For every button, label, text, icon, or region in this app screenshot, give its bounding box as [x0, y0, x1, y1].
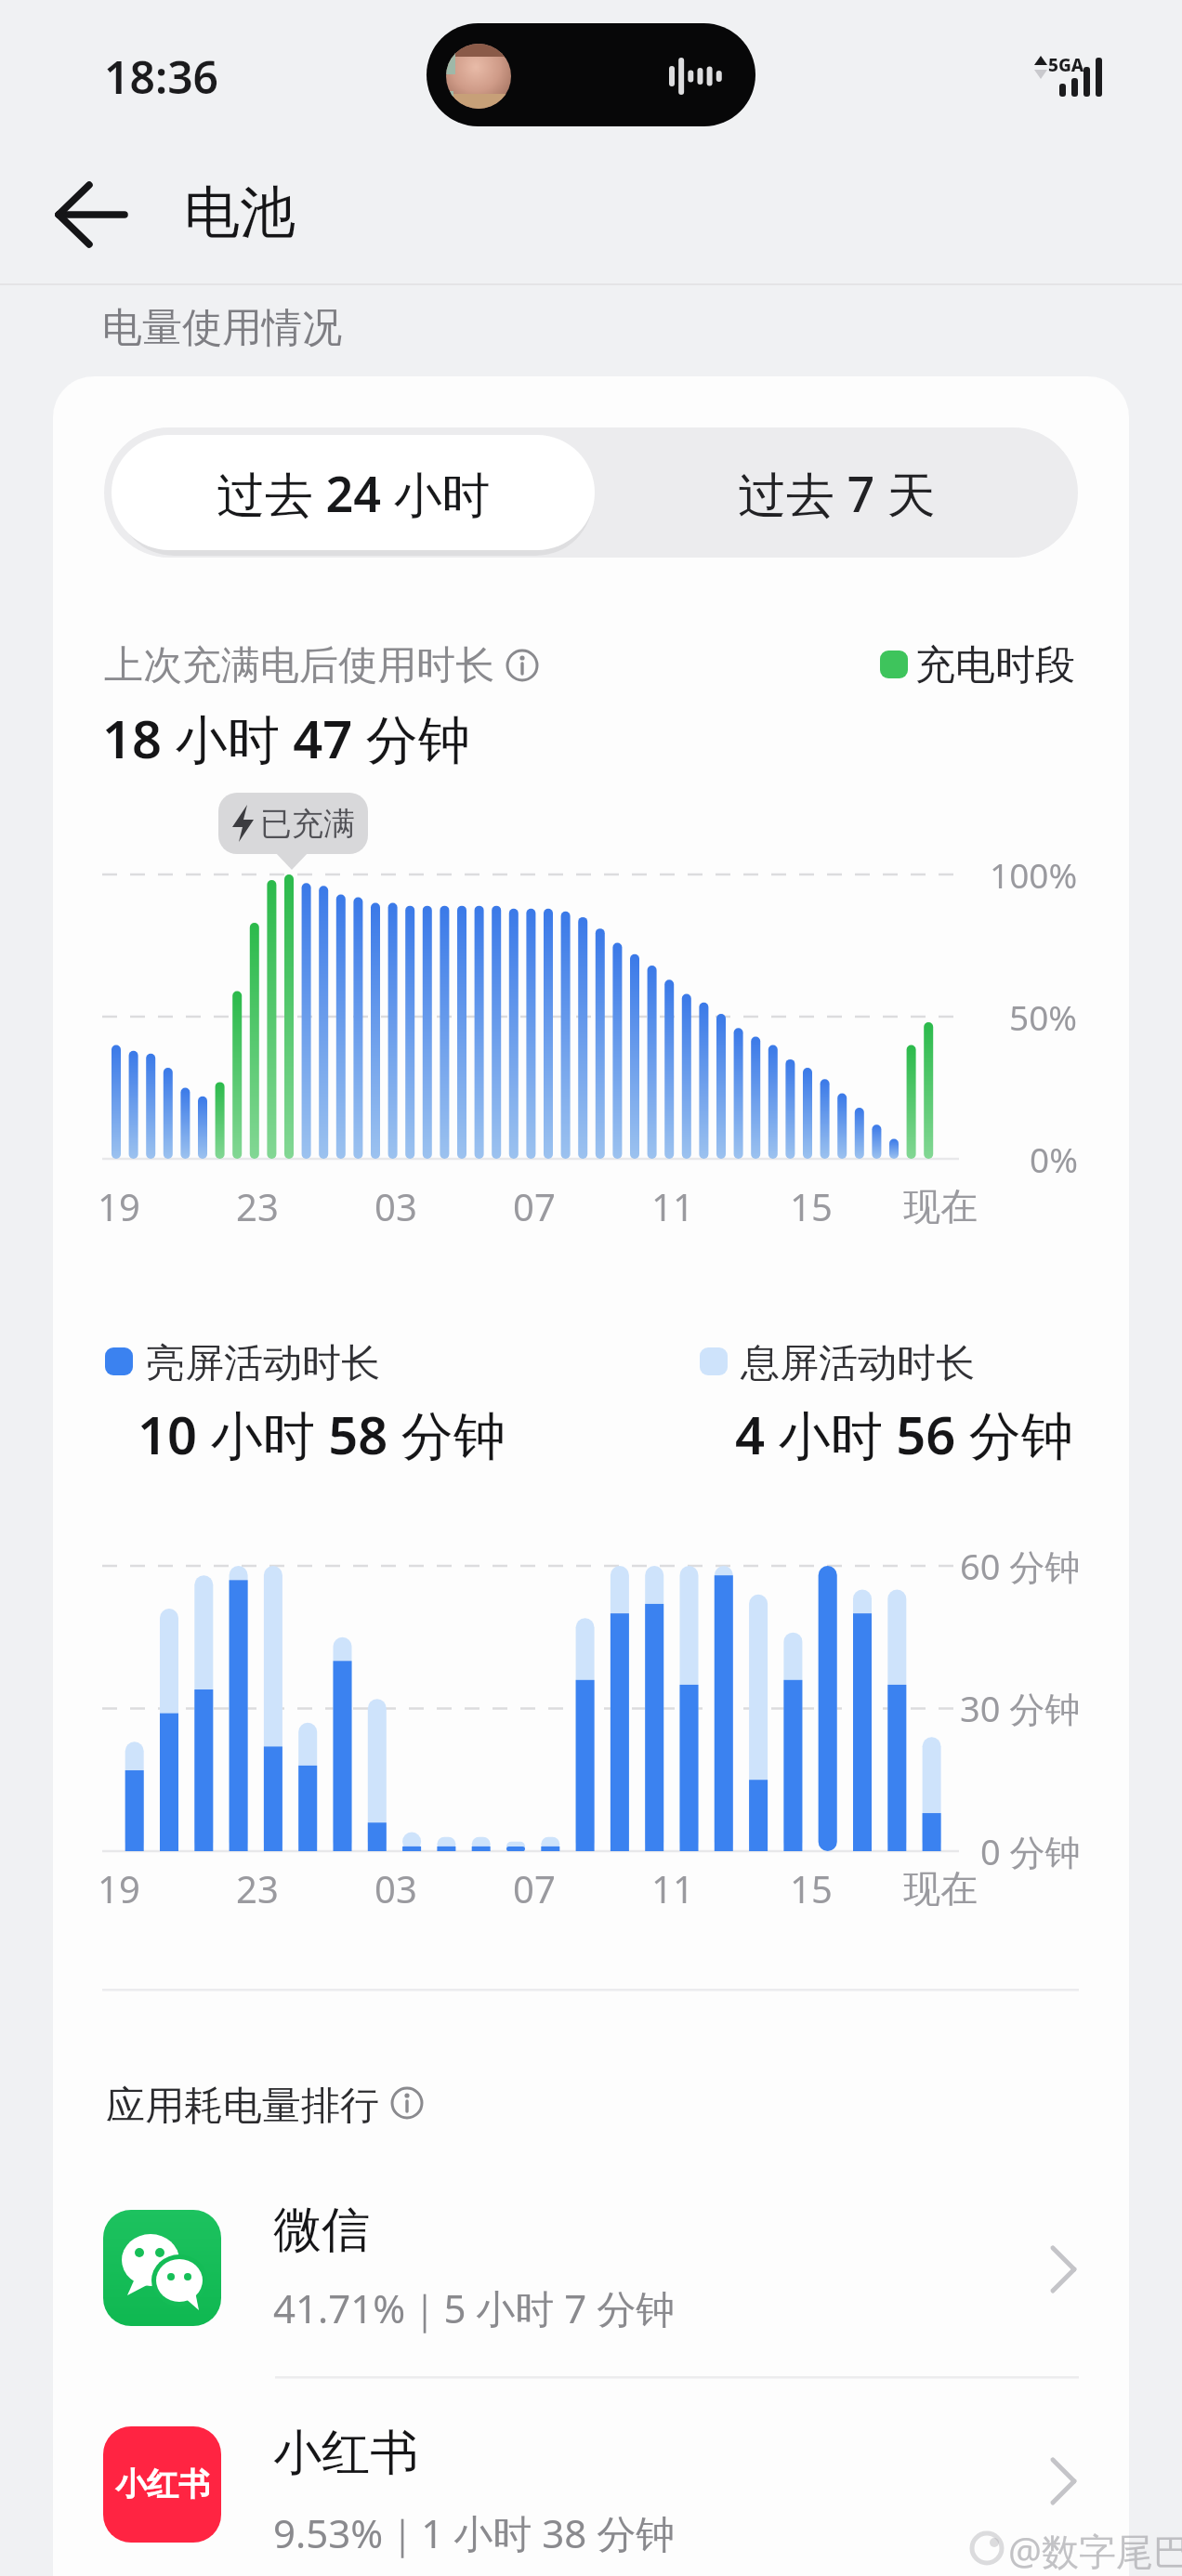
staticText: 电量使用情况 — [102, 303, 342, 353]
staticText: 41.71%｜5 小时 7 分钟 — [273, 2281, 676, 2334]
staticText: 小红书 — [273, 2423, 418, 2484]
staticText: 现在 — [903, 1865, 978, 1912]
staticText: 上次充满电后使用时长 — [104, 641, 494, 690]
staticText: 过去 24 小时 — [217, 460, 491, 526]
staticText: 23 — [236, 1863, 279, 1913]
button[interactable]: 过去 7 天 — [595, 451, 1078, 534]
staticText: 应用耗电量排行 — [106, 2082, 379, 2131]
staticText: 15 — [790, 1863, 833, 1913]
button[interactable] — [74, 2193, 1110, 2370]
staticText: 07 — [513, 1863, 556, 1913]
button[interactable] — [74, 2407, 1110, 2576]
staticText: 11 — [651, 1863, 694, 1913]
staticText: 18:36 — [104, 46, 219, 107]
staticText: 0% — [1030, 1136, 1078, 1182]
staticText: 微信 — [273, 2200, 370, 2261]
staticText: 23 — [236, 1181, 279, 1231]
staticText: 15 — [790, 1181, 833, 1231]
staticText: 过去 7 天 — [738, 460, 936, 526]
staticText: 现在 — [903, 1183, 978, 1229]
button[interactable]: 过去 24 小时 — [112, 451, 595, 534]
staticText: 0 分钟 — [980, 1827, 1081, 1875]
staticText: 19 — [98, 1863, 140, 1913]
staticText: 19 — [98, 1181, 140, 1231]
staticText: 30 分钟 — [960, 1684, 1081, 1732]
staticText: 18 小时 47 分钟 — [102, 703, 470, 773]
staticText: 9.53%｜1 小时 38 分钟 — [273, 2506, 676, 2559]
staticText: @数字尾巴 — [1008, 2525, 1182, 2576]
staticText: 50% — [1009, 993, 1078, 1040]
staticText: 4 小时 56 分钟 — [735, 1399, 1073, 1469]
staticText: 03 — [374, 1863, 417, 1913]
staticText: 10 小时 58 分钟 — [138, 1399, 506, 1469]
staticText: 5GA — [1048, 53, 1084, 77]
staticText: 息屏活动时长 — [741, 1339, 975, 1388]
staticText: 60 分钟 — [960, 1542, 1081, 1590]
staticText: 100% — [990, 851, 1078, 898]
button[interactable] — [595, 435, 1078, 550]
staticText: 亮屏活动时长 — [146, 1339, 380, 1388]
staticText: 07 — [513, 1181, 556, 1231]
staticText: 充电时段 — [915, 640, 1075, 690]
staticText: 小红书 — [115, 2464, 210, 2504]
staticText: 11 — [651, 1181, 694, 1231]
staticText: 已充满 — [260, 804, 355, 844]
button[interactable] — [37, 167, 149, 260]
staticText: 03 — [374, 1181, 417, 1231]
staticText: 电池 — [184, 177, 295, 248]
button[interactable] — [112, 435, 595, 550]
